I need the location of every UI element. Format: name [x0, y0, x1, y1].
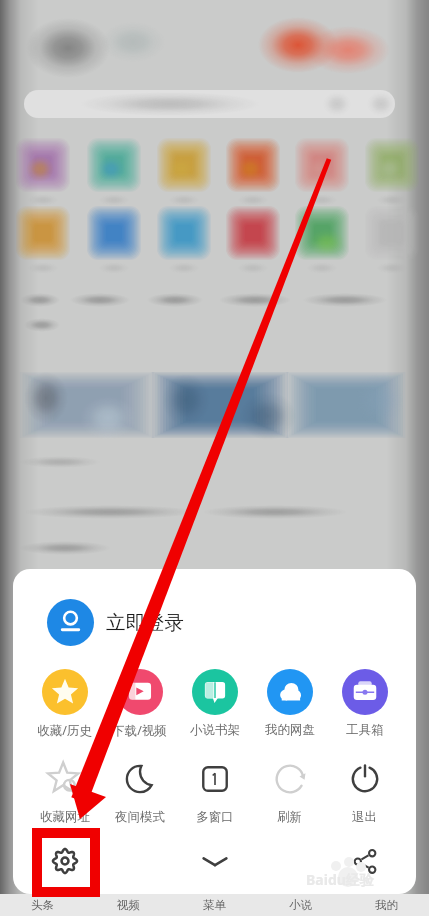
button[interactable]: 下载/视频 [102, 669, 177, 739]
button[interactable]: 收藏网址 [27, 756, 102, 825]
button[interactable]: 收藏/历史 [27, 669, 102, 739]
button[interactable]: 我的 [343, 894, 429, 916]
button[interactable]: 菜单 [171, 894, 257, 916]
staticText: 菜单 [203, 898, 226, 912]
staticText: 立即登录 [106, 610, 184, 635]
staticText: 退出 [352, 809, 377, 825]
button[interactable]: 退出 [327, 756, 402, 825]
button[interactable]: Collapse menu [188, 834, 242, 888]
button[interactable]: 立即登录 [47, 592, 277, 652]
staticText: 收藏/历史 [37, 722, 92, 739]
button[interactable]: 我的网盘 [252, 669, 327, 738]
button[interactable]: 刷新 [252, 756, 327, 825]
button[interactable]: 工具箱 [327, 669, 402, 738]
staticText: 头条 [31, 898, 54, 912]
button[interactable]: 小说书架 [177, 669, 252, 738]
button[interactable]: Settings [38, 834, 92, 888]
button[interactable]: 视频 [85, 894, 171, 916]
button[interactable]: Share [338, 834, 392, 888]
staticText: 视频 [117, 898, 140, 912]
staticText: 刷新 [277, 809, 302, 825]
button[interactable]: 多窗口 [177, 756, 252, 825]
staticText: Baidu经验 [306, 870, 374, 889]
staticText: 小说 [289, 898, 312, 912]
staticText: 收藏网址 [40, 809, 90, 825]
staticText: 小说书架 [190, 722, 240, 738]
button[interactable]: 夜间模式 [102, 756, 177, 825]
staticText: 工具箱 [346, 722, 384, 738]
staticText: 我的网盘 [265, 722, 315, 738]
button[interactable]: 小说 [257, 894, 343, 916]
button[interactable]: 头条 [0, 894, 85, 916]
staticText: 我的 [375, 898, 398, 912]
staticText: 多窗口 [196, 809, 234, 825]
staticText: 夜间模式 [115, 809, 165, 825]
staticText: 下载/视频 [112, 722, 167, 739]
